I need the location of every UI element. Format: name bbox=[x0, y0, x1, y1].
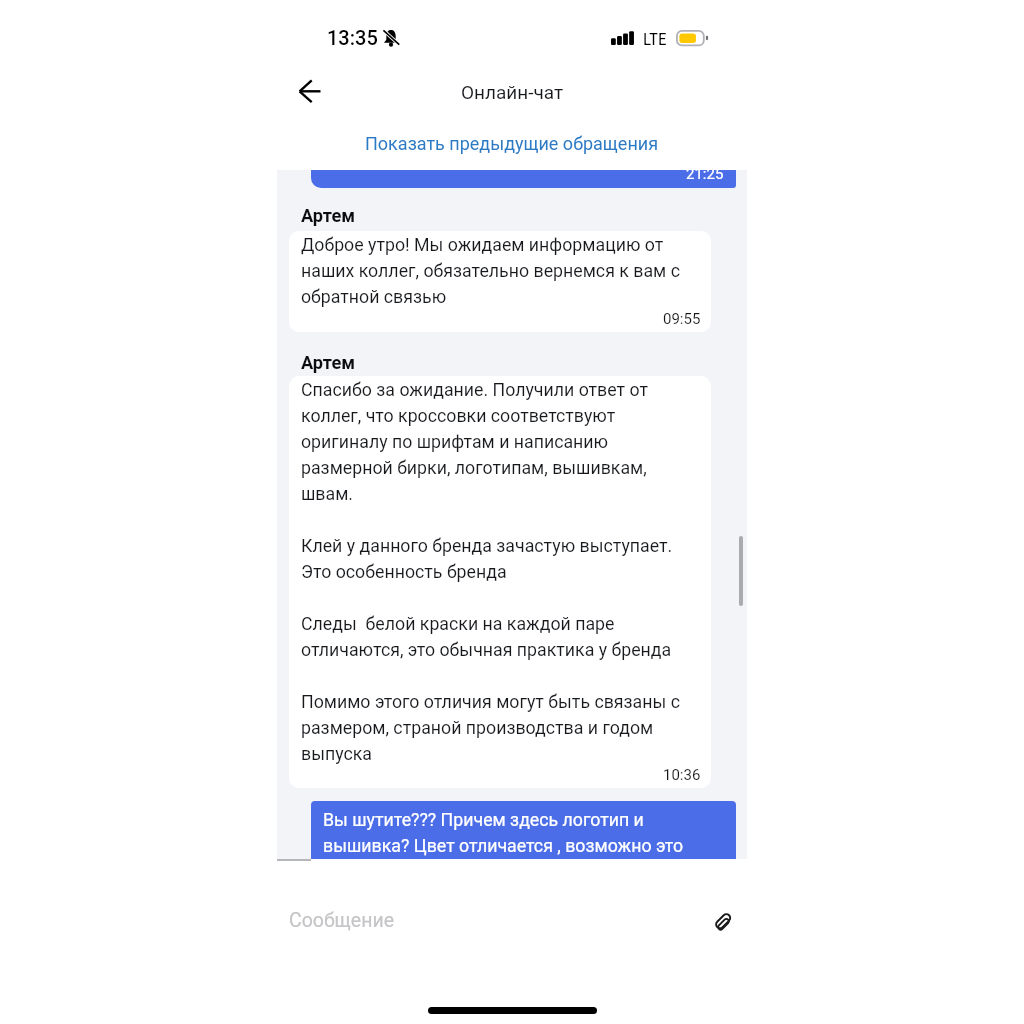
staticText: Онлайн-чат bbox=[461, 81, 564, 103]
staticText: 10:36 bbox=[663, 766, 701, 784]
button[interactable]: Сообщение bbox=[277, 885, 697, 957]
button[interactable]: Доброе утро! Мы ожидаем информацию от на… bbox=[289, 231, 711, 332]
staticText: 09:55 bbox=[663, 310, 701, 328]
staticText: Артем bbox=[301, 205, 356, 226]
button[interactable]: Показать предыдущие обращения bbox=[355, 125, 669, 161]
button[interactable]: Вы шутите??? Причем здесь логотип и выши… bbox=[311, 801, 736, 859]
button[interactable]: Спасибо за ожидание. Получили ответ от к… bbox=[289, 376, 711, 788]
staticText: Вы шутите??? Причем здесь логотип и выши… bbox=[323, 810, 684, 857]
staticText: Спасибо за ожидание. Получили ответ от к… bbox=[301, 380, 680, 765]
button[interactable]: Back bbox=[288, 69, 332, 113]
staticText: LTE bbox=[643, 29, 667, 49]
staticText: Доброе утро! Мы ожидаем информацию от на… bbox=[301, 235, 680, 308]
staticText: 13:35 bbox=[327, 26, 378, 49]
staticText: Артем bbox=[301, 352, 356, 373]
staticText: Сообщение bbox=[289, 909, 394, 932]
button[interactable]: 21:25 bbox=[311, 170, 736, 188]
staticText: 21:25 bbox=[686, 170, 724, 183]
button[interactable]: Attach file bbox=[702, 900, 746, 944]
staticText: Показать предыдущие обращения bbox=[365, 133, 659, 154]
